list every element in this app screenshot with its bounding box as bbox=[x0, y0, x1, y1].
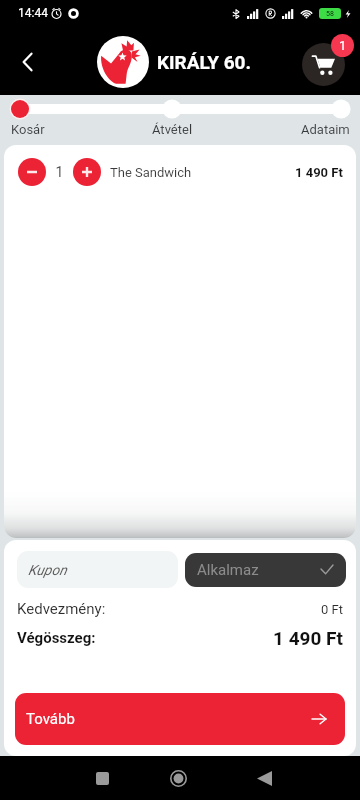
staticText: 14:44 bbox=[18, 6, 48, 20]
staticText: Alkalmaz bbox=[197, 561, 259, 579]
button[interactable]: Decrease quantity bbox=[18, 158, 46, 186]
staticText: 1 bbox=[339, 38, 347, 53]
staticText: Tovább bbox=[26, 710, 75, 728]
button[interactable]: Kupon bbox=[17, 551, 178, 588]
staticText: 1 490 Ft bbox=[273, 627, 343, 649]
staticText: 0 Ft bbox=[321, 602, 343, 617]
staticText: Végösszeg: bbox=[17, 629, 273, 647]
staticText: Kosár bbox=[11, 122, 45, 137]
staticText: Kupon bbox=[28, 562, 67, 578]
button[interactable]: Home bbox=[164, 764, 192, 792]
staticText: 1 490 Ft bbox=[295, 165, 343, 180]
button[interactable]: Alkalmaz bbox=[185, 553, 346, 587]
staticText: Átvétel bbox=[152, 122, 193, 137]
button[interactable]: Cart bbox=[302, 43, 345, 86]
staticText: Kedvezmény: bbox=[17, 600, 321, 618]
button[interactable]: Tovább bbox=[15, 693, 345, 745]
button[interactable]: Back bbox=[250, 764, 278, 792]
staticText: 1 bbox=[46, 164, 73, 180]
button[interactable]: Recents bbox=[88, 764, 116, 792]
staticText: The Sandwich bbox=[110, 165, 295, 180]
staticText: Adataim bbox=[301, 122, 350, 137]
button[interactable]: Back bbox=[6, 40, 50, 84]
button[interactable]: Increase quantity bbox=[73, 158, 101, 186]
staticText: KIRÁLY 60. bbox=[157, 51, 252, 73]
staticText: 58 bbox=[326, 10, 334, 18]
